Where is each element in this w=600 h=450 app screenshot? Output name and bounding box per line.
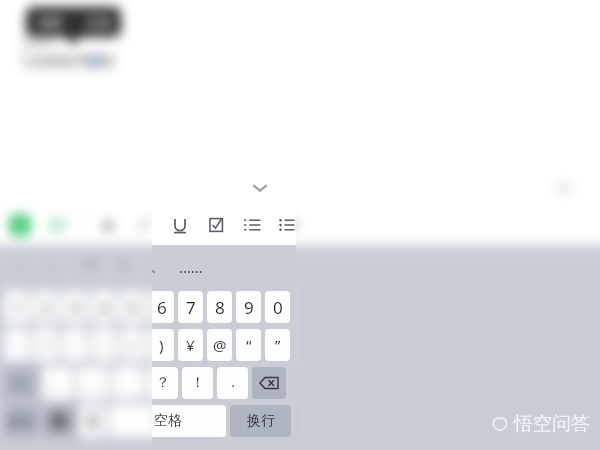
- staticText: ！: [191, 374, 205, 392]
- button[interactable]: ”: [265, 329, 290, 361]
- button[interactable]: Add: [10, 215, 30, 235]
- staticText: ……: [179, 257, 203, 277]
- button[interactable]: ……: [174, 245, 208, 288]
- button[interactable]: 换行: [230, 405, 291, 437]
- button[interactable]: Checklist: [206, 215, 226, 235]
- staticText: @: [213, 335, 227, 355]
- staticText: ．: [226, 374, 240, 392]
- staticText: B: [103, 215, 113, 235]
- staticText: 空格: [154, 412, 182, 430]
- button[interactable]: Numbered list: [242, 215, 262, 235]
- staticText: 8: [215, 296, 225, 319]
- staticText: ¥: [186, 335, 195, 355]
- button[interactable]: @: [207, 329, 232, 361]
- button[interactable]: 7: [178, 291, 203, 323]
- button[interactable]: 、: [112, 367, 143, 399]
- button[interactable]: 、: [152, 245, 174, 288]
- button[interactable]: ．: [217, 367, 248, 399]
- button[interactable]: 全选: [74, 7, 121, 37]
- staticText: 0: [273, 296, 283, 319]
- button[interactable]: Backspace: [252, 367, 286, 399]
- button[interactable]: Collapse: [552, 176, 576, 200]
- button[interactable]: Numbered list: [242, 215, 262, 235]
- button[interactable]: ？: [72, 245, 106, 288]
- button[interactable]: Backspace: [252, 367, 286, 399]
- button[interactable]: ，: [0, 245, 36, 288]
- staticText: “: [246, 335, 252, 355]
- button[interactable]: ……: [174, 245, 208, 288]
- button[interactable]: 。: [42, 367, 73, 399]
- button[interactable]: @: [207, 329, 232, 361]
- button[interactable]: ！: [182, 367, 213, 399]
- button[interactable]: #+=: [4, 367, 38, 399]
- staticText: 2: [41, 296, 51, 319]
- button[interactable]: Bullet list: [278, 215, 296, 235]
- button[interactable]: Language: [42, 405, 76, 437]
- button[interactable]: 8: [207, 291, 232, 323]
- staticText: 0: [273, 296, 283, 319]
- staticText: ？: [156, 374, 170, 392]
- button[interactable]: ¥: [178, 329, 203, 361]
- button[interactable]: 6: [149, 291, 174, 323]
- button[interactable]: 6: [152, 291, 174, 323]
- button[interactable]: ？: [152, 367, 178, 399]
- button[interactable]: “: [236, 329, 261, 361]
- button[interactable]: ): [149, 329, 174, 361]
- staticText: #+=: [11, 376, 31, 391]
- button[interactable]: Bullet list: [278, 215, 298, 235]
- button[interactable]: ，: [77, 367, 108, 399]
- button[interactable]: 5: [120, 291, 145, 323]
- staticText: 12345678: [20, 50, 94, 72]
- staticText: 、: [150, 257, 165, 276]
- button[interactable]: Font style: [47, 215, 67, 235]
- button[interactable]: 0: [265, 291, 290, 323]
- button[interactable]: ？: [147, 367, 178, 399]
- button[interactable]: ！: [182, 367, 213, 399]
- button[interactable]: Italic: [134, 215, 154, 235]
- button[interactable]: Bold: [98, 215, 118, 235]
- button[interactable]: 7: [178, 291, 203, 323]
- button[interactable]: Checklist: [206, 215, 226, 235]
- button[interactable]: 2: [33, 291, 58, 323]
- button[interactable]: 9: [236, 291, 261, 323]
- button[interactable]: 、: [140, 245, 174, 288]
- button[interactable]: 空格: [152, 405, 226, 437]
- button[interactable]: Voice input: [80, 405, 106, 437]
- staticText: “: [246, 335, 252, 355]
- button[interactable]: 8: [207, 291, 232, 323]
- button[interactable]: Underline: [170, 215, 190, 235]
- button[interactable]: 9: [236, 291, 261, 323]
- button[interactable]: 空格: [110, 405, 226, 437]
- button[interactable]: “: [236, 329, 261, 361]
- button[interactable]: -: [4, 329, 29, 361]
- button[interactable]: (: [120, 329, 145, 361]
- staticText: 9: [244, 296, 254, 319]
- button[interactable]: 1: [4, 291, 29, 323]
- button[interactable]: Underline: [170, 215, 190, 235]
- button[interactable]: ！: [106, 245, 140, 288]
- button[interactable]: 3: [62, 291, 87, 323]
- button[interactable]: 4: [91, 291, 116, 323]
- button[interactable]: ”: [265, 329, 290, 361]
- button[interactable]: ．: [217, 367, 248, 399]
- staticText: 5: [128, 296, 138, 319]
- button[interactable]: 拼音: [4, 405, 38, 437]
- button[interactable]: ¥: [178, 329, 203, 361]
- staticText: ): [159, 335, 164, 355]
- staticText: ¥: [186, 335, 195, 355]
- button[interactable]: 0: [265, 291, 290, 323]
- button[interactable]: ): [152, 329, 174, 361]
- button[interactable]: /: [33, 329, 58, 361]
- staticText: 悟空问答: [514, 412, 590, 436]
- button[interactable]: 选择: [26, 7, 73, 37]
- staticText: 8: [215, 296, 225, 319]
- button[interactable]: :: [62, 329, 87, 361]
- button[interactable]: Collapse: [248, 176, 272, 200]
- button[interactable]: ;: [91, 329, 116, 361]
- button[interactable]: 。: [36, 245, 72, 288]
- button[interactable]: 换行: [230, 405, 291, 437]
